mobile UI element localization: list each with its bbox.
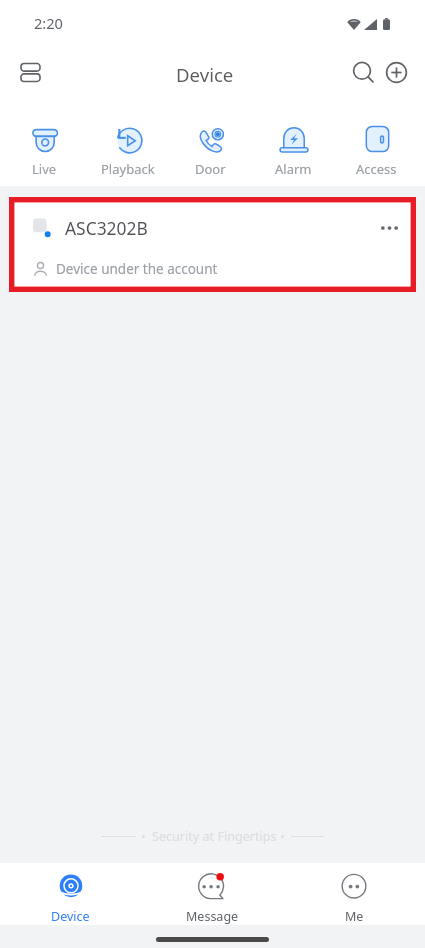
staticText: Me: [345, 908, 364, 925]
button[interactable]: Door: [169, 96, 252, 186]
staticText: Message: [186, 908, 239, 925]
button[interactable]: Add device: [378, 54, 414, 90]
button[interactable]: More options: [374, 213, 404, 243]
staticText: Playback: [101, 160, 155, 178]
button[interactable]: Me: [283, 863, 425, 925]
button[interactable]: ASC3202B: [9, 197, 416, 292]
staticText: Device: [176, 62, 234, 87]
staticText: ASC3202B: [65, 216, 148, 240]
staticText: 2:20: [34, 13, 63, 33]
staticText: Access: [356, 160, 397, 178]
staticText: Alarm: [275, 160, 312, 178]
button[interactable]: Live: [2, 96, 86, 186]
button[interactable]: Layout: [10, 52, 50, 92]
staticText: Door: [195, 160, 226, 178]
staticText: Device under the account: [56, 260, 218, 278]
button[interactable]: Search: [345, 54, 381, 90]
staticText: Security at Fingertips: [152, 828, 277, 845]
staticText: Device: [51, 908, 90, 925]
staticText: Live: [32, 160, 57, 178]
button[interactable]: Access: [335, 96, 418, 186]
button[interactable]: Message: [141, 863, 283, 925]
button[interactable]: Playback: [86, 96, 169, 186]
button[interactable]: Device: [0, 863, 141, 925]
button[interactable]: Alarm: [252, 96, 335, 186]
